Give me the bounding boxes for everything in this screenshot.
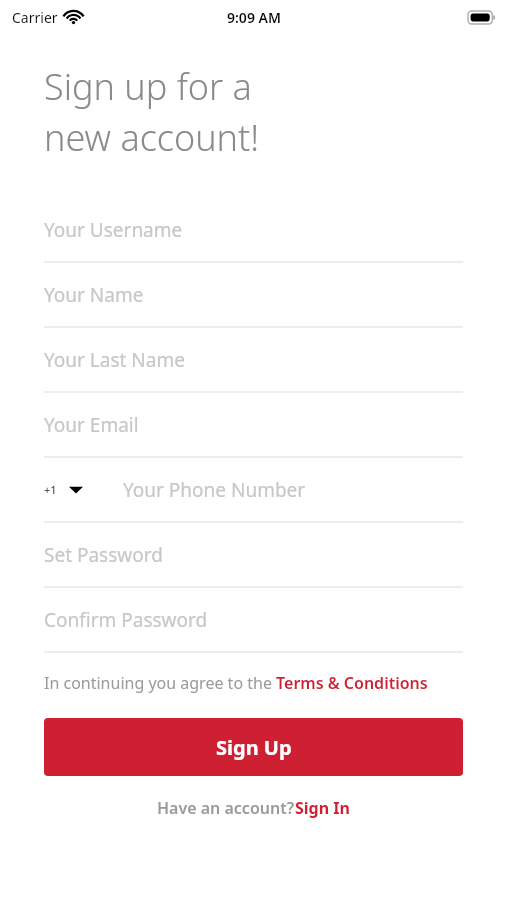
button[interactable]: In continuing you agree to the Terms & C… (44, 672, 463, 694)
staticText: Sign up for a new account! (44, 62, 260, 162)
staticText: Have an account? (157, 797, 295, 819)
button[interactable]: Your Last Name (44, 328, 463, 393)
staticText: Carrier (12, 8, 58, 27)
button[interactable]: Your Name (44, 263, 463, 328)
other: Select country code (69, 485, 83, 495)
button[interactable]: Your Username (44, 198, 463, 263)
button[interactable]: Your Email (44, 393, 463, 458)
button[interactable]: +1 (44, 458, 463, 523)
button[interactable]: Confirm Password (44, 588, 463, 653)
staticText: +1 (44, 482, 57, 497)
staticText: Your Last Name (44, 347, 185, 373)
staticText: Sign Up (216, 734, 292, 761)
staticText: Your Username (44, 217, 183, 243)
button[interactable]: Sign Up (44, 718, 463, 776)
staticText: Set Password (44, 542, 163, 568)
button[interactable]: Set Password (44, 523, 463, 588)
staticText: Your Phone Number (123, 477, 306, 503)
button[interactable]: Have an account? (44, 797, 463, 819)
staticText: Your Name (44, 282, 144, 308)
staticText: Sign In (295, 797, 350, 819)
staticText: Confirm Password (44, 607, 208, 633)
staticText: Your Email (44, 412, 139, 438)
staticText: 9:09 AM (227, 8, 281, 27)
